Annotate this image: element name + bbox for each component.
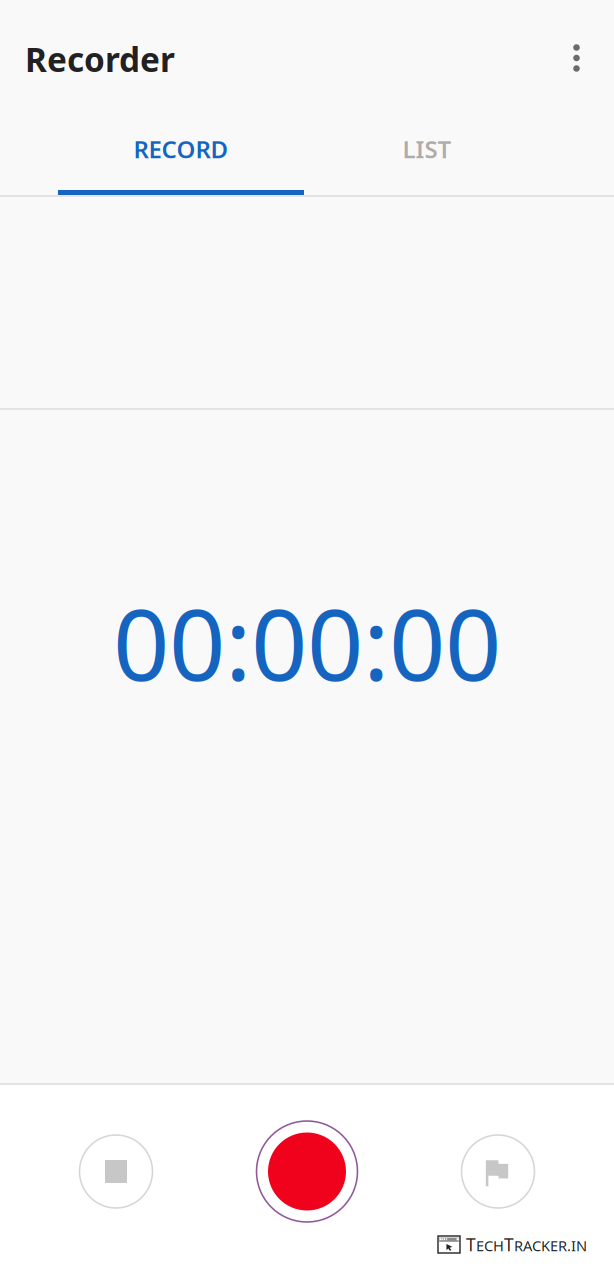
staticText: RECORD — [133, 133, 228, 165]
button[interactable]: RECORD — [58, 112, 304, 195]
staticText: Recorder — [25, 37, 175, 81]
button[interactable]: Stop — [64, 1119, 168, 1223]
button[interactable]: Record — [252, 1116, 362, 1226]
button[interactable]: Flag — [446, 1119, 550, 1223]
staticText: TECHTRACKER.IN — [466, 1233, 587, 1256]
button[interactable]: LIST — [304, 112, 550, 195]
staticText: 00:00:00 — [113, 577, 501, 708]
staticText: LIST — [402, 133, 451, 165]
button[interactable]: More options — [540, 16, 604, 96]
